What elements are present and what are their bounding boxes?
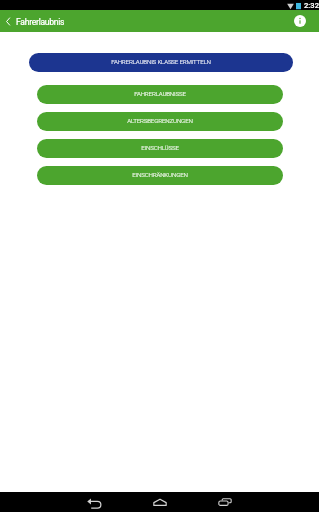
- button[interactable]: FAHRERLAUBNISSE: [37, 85, 283, 104]
- staticText: ALTERSBEGRENZUNGEN: [127, 117, 193, 124]
- staticText: FAHRERLAUBNIS KLASSE ERMITTELN: [111, 58, 211, 65]
- staticText: FAHRERLAUBNISSE: [134, 90, 186, 97]
- button[interactable]: ALTERSBEGRENZUNGEN: [37, 112, 283, 131]
- button[interactable]: Back: [83, 492, 105, 512]
- button[interactable]: EINSCHLÜSSE: [37, 139, 283, 158]
- staticText: 2:32: [304, 1, 319, 10]
- staticText: Fahrerlaubnis: [16, 17, 65, 27]
- button[interactable]: FAHRERLAUBNIS KLASSE ERMITTELN: [29, 53, 293, 72]
- button[interactable]: EINSCHRÄNKUNGEN: [37, 166, 283, 185]
- staticText: EINSCHRÄNKUNGEN: [132, 171, 188, 178]
- button[interactable]: Info: [286, 10, 314, 32]
- button[interactable]: Home: [149, 492, 171, 512]
- staticText: EINSCHLÜSSE: [141, 144, 179, 151]
- button[interactable]: Recent apps: [214, 492, 236, 512]
- button[interactable]: Back: [0, 10, 16, 32]
